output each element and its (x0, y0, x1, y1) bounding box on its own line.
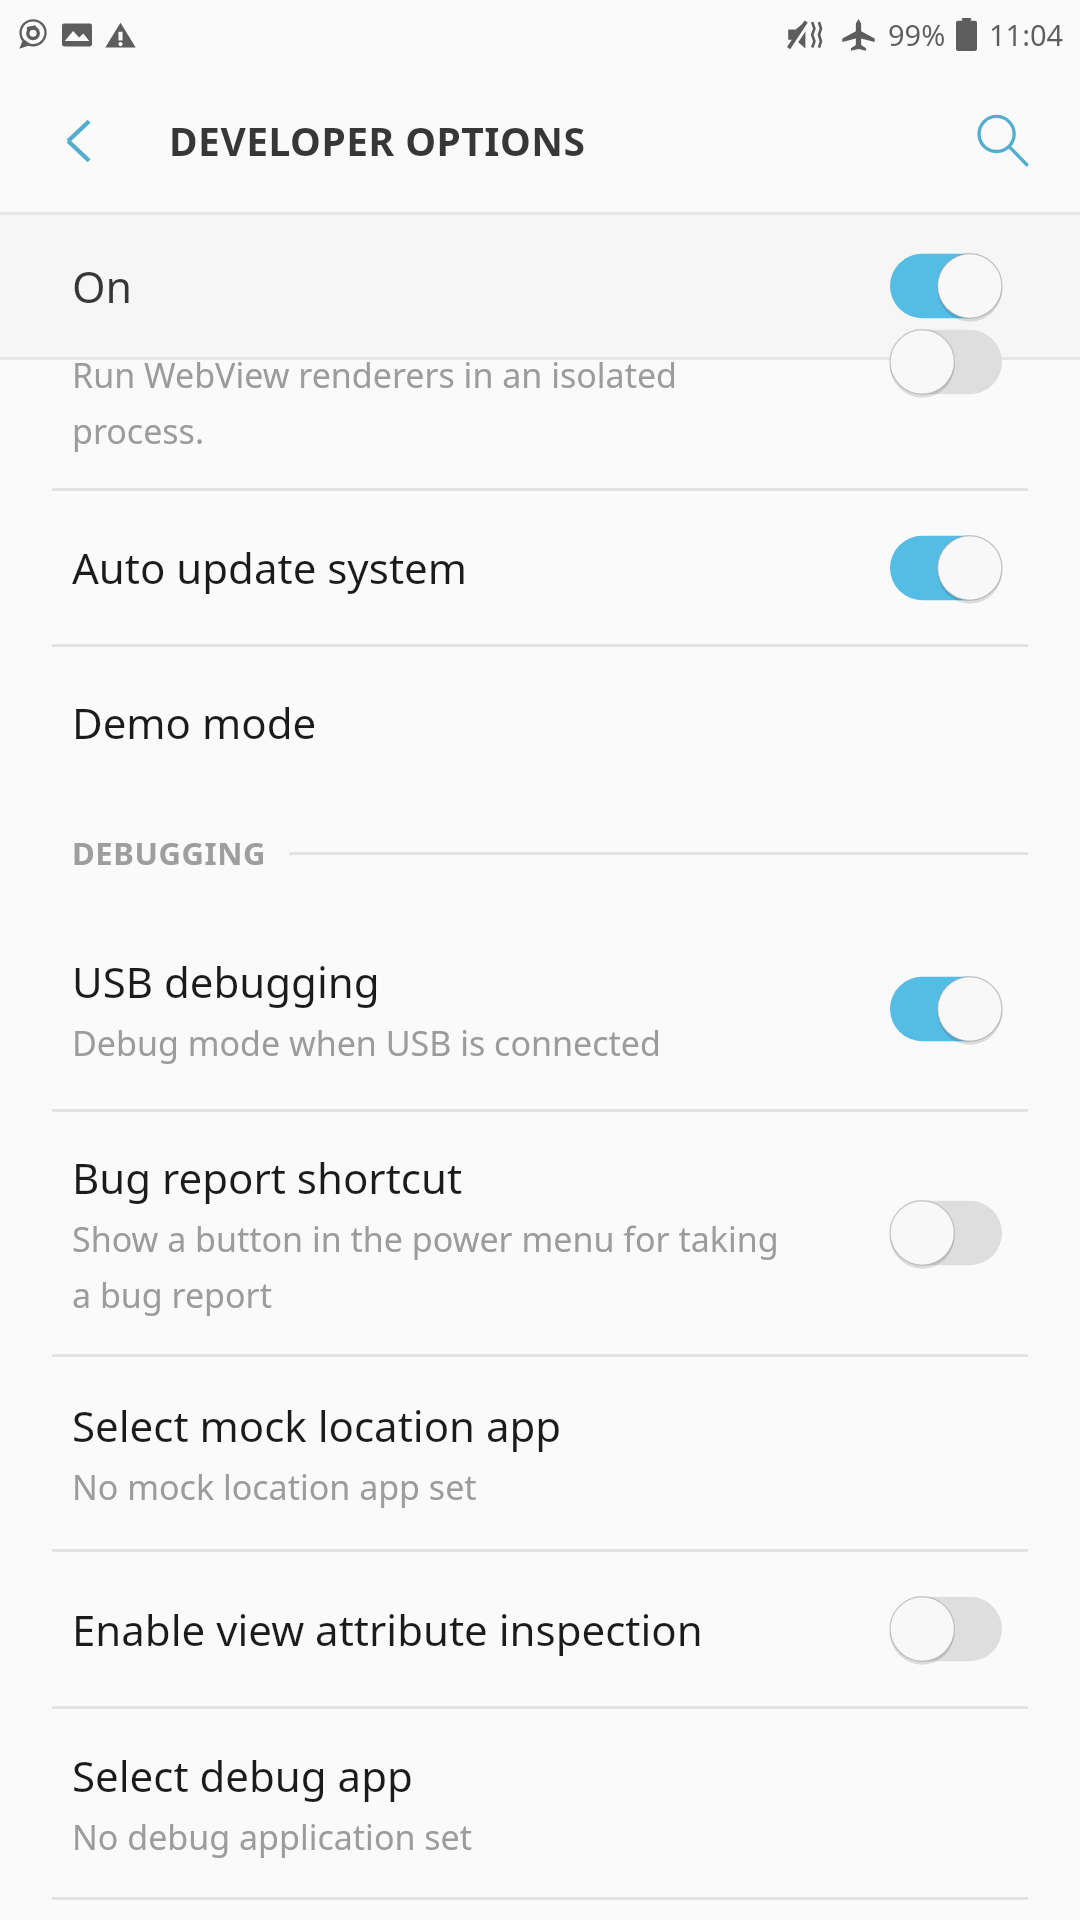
staticText: Select mock location app (72, 1397, 562, 1454)
button[interactable]: Demo mode (0, 647, 1080, 797)
button[interactable]: Bug report shortcut (0, 1112, 1080, 1354)
staticText: USB debugging (72, 953, 380, 1010)
button[interactable]: Run WebView renderers in an isolated pro… (0, 360, 1080, 488)
button[interactable]: Auto update system (0, 491, 1080, 644)
staticText: Enable view attribute inspection (72, 1601, 703, 1658)
button[interactable]: Enable view attribute inspection (0, 1552, 1080, 1706)
staticText: Show a button in the power menu for taki… (72, 1216, 779, 1318)
staticText: Debug mode when USB is connected (72, 1020, 661, 1066)
staticText: DEBUGGING (72, 832, 267, 874)
button[interactable]: Switch off (890, 1198, 1002, 1268)
staticText: 11:04 (989, 15, 1064, 54)
staticText: On (72, 257, 133, 316)
staticText: Select debug app (72, 1747, 413, 1804)
button[interactable]: Select debug app (0, 1709, 1080, 1897)
staticText: Run WebView renderers in an isolated pro… (72, 352, 677, 454)
button[interactable]: Switch off (890, 1594, 1002, 1664)
button[interactable]: Select mock location app (0, 1357, 1080, 1549)
button[interactable]: On (0, 215, 1080, 357)
button[interactable]: Switch on (890, 533, 1002, 603)
button[interactable]: Switch on (890, 974, 1002, 1044)
button[interactable]: Switch on (890, 251, 1002, 321)
staticText: No debug application set (72, 1814, 473, 1860)
staticText: Bug report shortcut (72, 1149, 463, 1206)
button[interactable]: Back (40, 102, 118, 180)
staticText: No mock location app set (72, 1464, 477, 1510)
staticText: Demo mode (72, 694, 317, 751)
button[interactable]: Search (960, 99, 1044, 183)
staticText: 99% (888, 15, 946, 54)
button[interactable]: Switch off (890, 327, 1002, 397)
button[interactable]: USB debugging (0, 909, 1080, 1109)
staticText: DEVELOPER OPTIONS (169, 114, 586, 167)
staticText: Auto update system (72, 539, 468, 596)
